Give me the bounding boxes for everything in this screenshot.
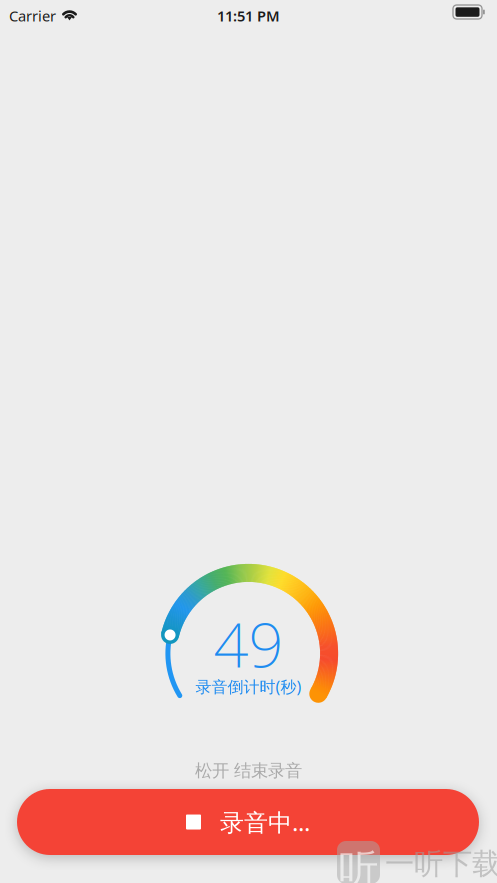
staticText: 录音中...	[220, 806, 310, 838]
staticText: 11:51 PM	[217, 6, 280, 25]
button[interactable]: 录音中...	[17, 789, 479, 855]
staticText: 录音倒计时(秒)	[195, 676, 301, 697]
staticText: 一听下载	[385, 846, 497, 882]
staticText: Carrier	[9, 6, 56, 25]
staticText: 松开 结束录音	[195, 760, 302, 781]
staticText: 听	[338, 845, 378, 883]
staticText: 49	[213, 603, 283, 684]
